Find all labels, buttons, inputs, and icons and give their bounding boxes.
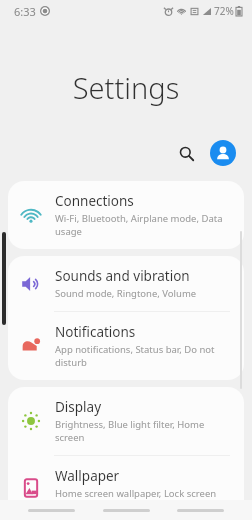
button[interactable]: Display <box>8 387 244 455</box>
button[interactable]: Search <box>171 138 201 168</box>
staticText: Settings <box>0 68 252 107</box>
staticText: Notifications <box>55 323 136 341</box>
staticText: Wi-Fi, Bluetooth, Airplane mode, Data us… <box>55 212 232 238</box>
staticText: 72% <box>214 4 234 18</box>
staticText: Home screen wallpaper, Lock screen wallp… <box>55 487 217 509</box>
staticText: 6:33 <box>14 4 36 19</box>
staticText: Sounds and vibration <box>55 267 190 285</box>
staticText: Brightness, Blue light filter, Home scre… <box>55 418 232 444</box>
staticText: Sound mode, Ringtone, Volume <box>55 287 197 300</box>
staticText: Connections <box>55 192 134 210</box>
button[interactable]: Home <box>103 509 150 512</box>
button[interactable]: Back <box>177 509 224 512</box>
staticText: Display <box>55 398 102 416</box>
button[interactable]: Notifications <box>8 312 244 380</box>
staticText: App notifications, Status bar, Do not di… <box>55 343 232 369</box>
button[interactable]: Sounds and vibration <box>8 256 244 311</box>
staticText: Wallpaper <box>55 467 120 485</box>
button[interactable]: Recents <box>28 509 75 512</box>
button[interactable]: Wallpaper <box>8 456 244 520</box>
button[interactable]: Connections <box>8 181 244 249</box>
button[interactable]: Account <box>210 140 236 166</box>
